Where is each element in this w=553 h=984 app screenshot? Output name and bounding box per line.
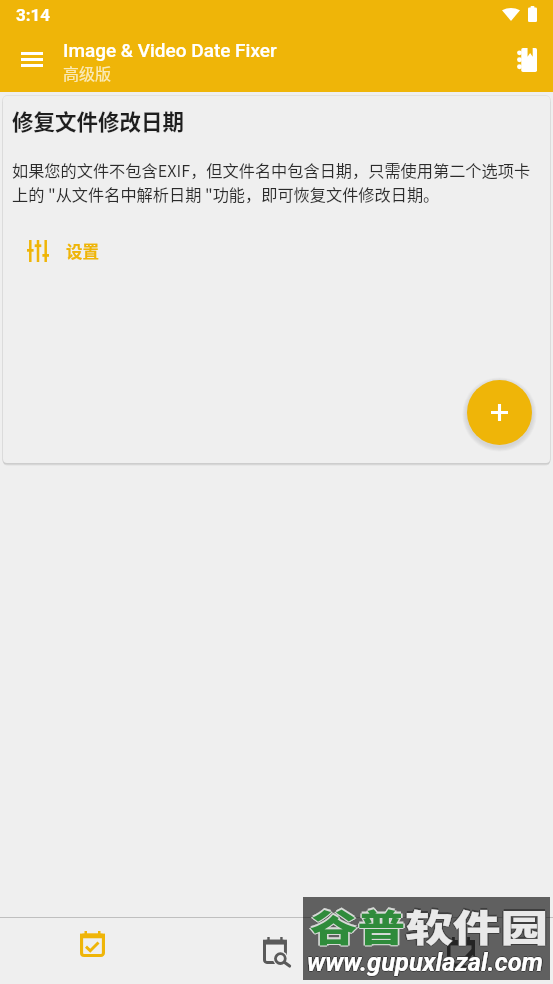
staticText: 谷普 [310,898,405,951]
button[interactable]: Edit dates [369,918,553,984]
staticText: 如果您的文件不包含EXIF，但文件名中包含日期，只需使用第二个选项卡上的 "从文… [12,158,540,206]
staticText: 软件园 [405,898,548,951]
staticText: 3:14 [16,5,51,25]
staticText: 谷普 [310,900,405,954]
staticText: www.gupuxlazal.com [308,947,545,977]
staticText: 谷普 [310,899,405,953]
staticText: 谷普 [311,899,407,953]
button[interactable]: Open navigation drawer [10,37,54,81]
staticText: www.gupuxlazal.com [307,946,544,976]
staticText: www.gupuxlazal.com [306,947,543,977]
staticText: 软件园 [404,899,547,953]
staticText: 软件园 [405,899,548,953]
staticText: 高级版 [63,61,112,84]
button[interactable]: Search dates [185,918,369,984]
staticText: 设置 [66,239,99,263]
staticText: 软件园 [407,899,549,953]
button[interactable]: Add [467,380,532,445]
button[interactable]: Manual [504,38,548,82]
staticText: 修复文件修改日期 [12,105,185,136]
button[interactable]: 设置 [12,239,99,263]
button[interactable]: Fix file dates [0,918,185,984]
staticText: Image & Video Date Fixer [63,39,277,61]
staticText: 谷普 [309,899,404,953]
staticText: 软件园 [405,900,548,954]
staticText: www.gupuxlazal.com [307,948,544,978]
staticText: www.gupuxlazal.com [307,947,544,977]
